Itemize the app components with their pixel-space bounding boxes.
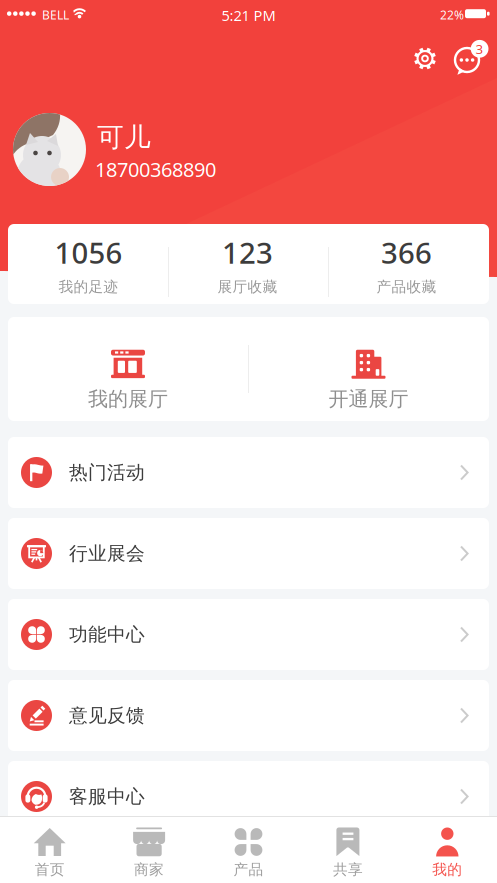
staticText: 18700368890 [95,156,216,183]
staticText: 展厅收藏 [217,278,277,296]
staticText: 产品收藏 [376,278,436,296]
staticText: 行业展会 [69,542,145,565]
button[interactable]: 首页 [0,816,99,883]
button[interactable]: 366 [327,233,486,296]
staticText: 商家 [134,860,164,878]
staticText: 123 [222,233,273,272]
staticText: 产品 [233,860,263,878]
button[interactable]: 商家 [99,816,199,883]
staticText: 可儿 [97,121,151,154]
staticText: 意见反馈 [69,704,145,727]
button[interactable]: 客服中心 [8,761,489,832]
staticText: 功能中心 [69,623,145,646]
button[interactable]: 意见反馈 [8,680,489,751]
staticText: 366 [381,233,432,272]
staticText: 1056 [54,233,122,272]
button[interactable]: 1056 [9,233,168,296]
button[interactable]: 产品 [199,816,298,883]
button[interactable]: Profile photo [13,113,86,186]
staticText: 首页 [35,860,65,878]
button[interactable]: 行业展会 [8,518,489,589]
staticText: 我的足迹 [58,278,118,296]
button[interactable]: 热门活动 [8,437,489,508]
staticText: BELL [42,7,69,23]
staticText: 22% [440,7,464,23]
button[interactable]: Settings [410,43,440,73]
button[interactable]: 123 [168,233,327,296]
staticText: 客服中心 [69,785,145,808]
staticText: 5:21 PM [221,5,275,25]
button[interactable]: Messages [451,43,489,77]
staticText: 开通展厅 [328,387,408,411]
button[interactable]: 我的 [398,816,497,883]
staticText: 我的展厅 [88,387,168,411]
button[interactable]: 共享 [298,816,398,883]
button[interactable]: 功能中心 [8,599,489,670]
staticText: 共享 [333,860,363,878]
staticText: 3 [476,40,484,58]
button[interactable]: 我的展厅 [8,317,248,421]
staticText: 我的 [432,860,462,878]
staticText: 热门活动 [69,461,145,484]
button[interactable]: 开通展厅 [248,317,489,421]
